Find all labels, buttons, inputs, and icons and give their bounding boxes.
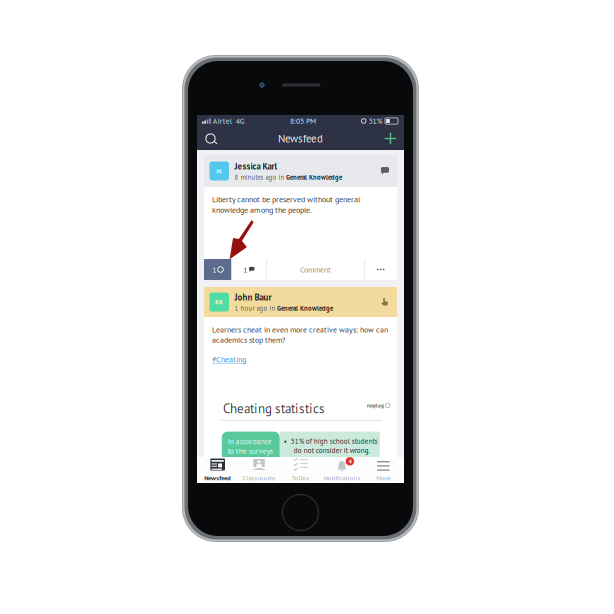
staticText: More xyxy=(376,473,390,482)
staticText: Jessica Karl xyxy=(234,160,277,172)
staticText: 4 xyxy=(348,457,351,465)
button[interactable]: Like xyxy=(204,259,231,280)
staticText: Learners cheat in even more creative way… xyxy=(212,324,388,345)
button[interactable]: Comments xyxy=(379,165,391,177)
button[interactable]: Comment xyxy=(266,259,364,280)
staticText: ToDos xyxy=(291,473,309,482)
staticText: noplag xyxy=(367,402,384,409)
staticText: Classrooms xyxy=(243,473,276,482)
staticText: In accordance to the surveys xyxy=(228,437,273,456)
staticText: 1 hour ago in xyxy=(234,304,275,313)
staticText: Newsfeed xyxy=(278,131,323,145)
button[interactable]: ToDos xyxy=(280,457,321,483)
staticText: 1 xyxy=(212,264,216,275)
staticText: • 51% of high school students do not con… xyxy=(284,437,378,455)
button[interactable]: Newsfeed xyxy=(197,457,238,483)
button[interactable]: 4 xyxy=(321,457,363,483)
staticText: Cheating statistics xyxy=(223,400,325,417)
staticText: John Baur xyxy=(234,291,271,303)
staticText: RR xyxy=(215,298,223,306)
staticText: 1 xyxy=(243,264,247,275)
button[interactable]: Classrooms xyxy=(238,457,280,483)
staticText: 8:05 PM xyxy=(290,116,316,126)
staticText: Liberty cannot be preserved without gene… xyxy=(212,194,360,215)
staticText: Newsfeed xyxy=(204,473,231,482)
button[interactable]: More options xyxy=(364,259,397,280)
staticText: General Knowledge xyxy=(277,304,333,313)
staticText: General Knowledge xyxy=(286,173,342,182)
staticText: #Cheating xyxy=(212,354,246,364)
button[interactable]: 1 comment xyxy=(231,259,266,280)
staticText: 8 minutes ago in xyxy=(234,173,284,182)
staticText: Notifications xyxy=(323,473,360,482)
staticText: 31% xyxy=(368,116,382,126)
staticText: Comment xyxy=(300,264,331,275)
button[interactable]: More xyxy=(363,457,404,483)
button[interactable]: Search xyxy=(197,127,225,150)
button[interactable]: Like xyxy=(379,296,391,308)
staticText: 4G xyxy=(236,116,245,126)
staticText: Airtel xyxy=(213,116,232,126)
staticText: JK xyxy=(216,167,222,175)
button[interactable]: New post xyxy=(376,127,404,150)
